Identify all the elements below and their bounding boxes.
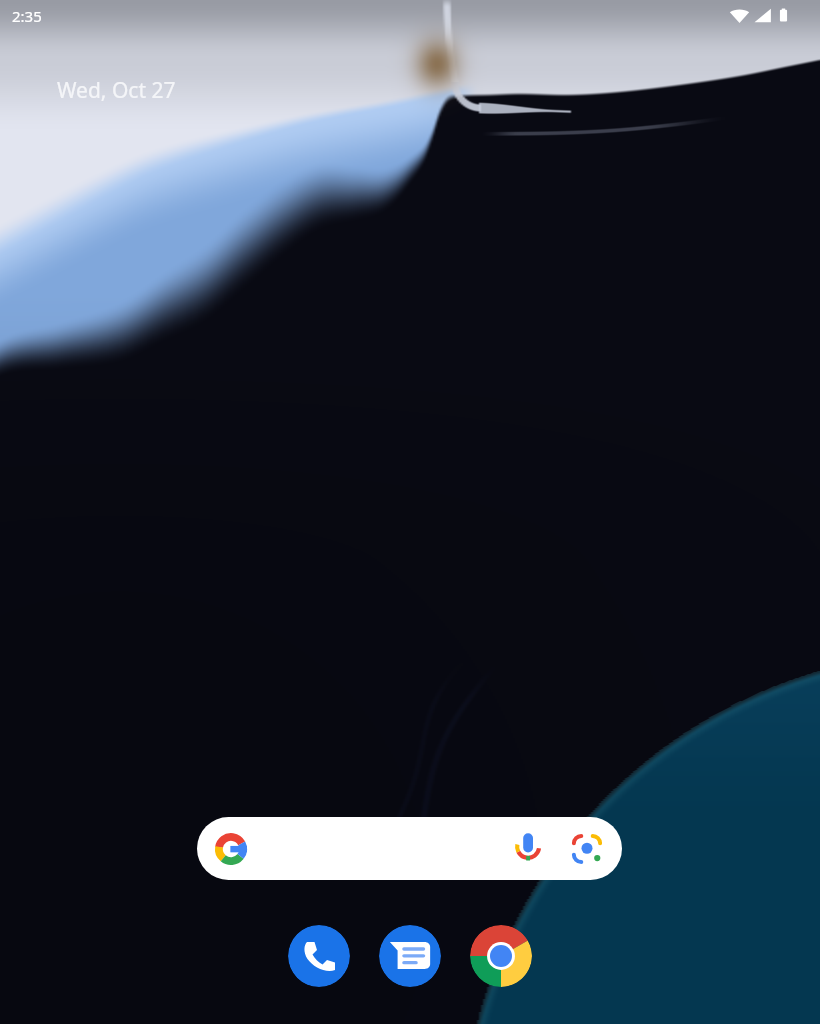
button[interactable]: Chrome (470, 925, 532, 987)
button[interactable]: Google Lens (568, 830, 606, 868)
button[interactable]: Voice search (509, 829, 549, 869)
button[interactable]: Phone (288, 925, 350, 987)
staticText: 2:35 (12, 6, 42, 26)
staticText: Wed, Oct 27 (57, 76, 176, 105)
button[interactable]: Search (197, 817, 622, 880)
button[interactable]: Messages (379, 925, 441, 987)
